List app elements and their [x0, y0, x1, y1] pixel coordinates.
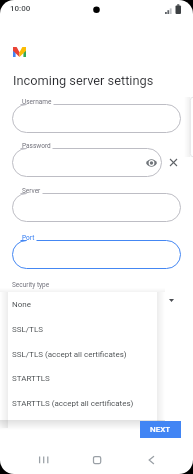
button[interactable]: STARTTLS (accept all certificates) [8, 391, 157, 416]
staticText: 10:00 [10, 4, 31, 13]
button[interactable]: STARTTLS [8, 366, 157, 391]
button[interactable]: Username [12, 104, 181, 133]
button[interactable]: Back [137, 449, 166, 471]
staticText: Server [22, 187, 41, 195]
staticText: SSL/TLS (accept all certificates) [12, 350, 127, 359]
button[interactable]: Recent apps [29, 449, 58, 471]
staticText: Incoming server settings [13, 73, 154, 88]
staticText: SSL/TLS [12, 325, 43, 334]
staticText: Port [22, 234, 35, 242]
staticText: Password [22, 142, 51, 150]
staticText: NEXT [150, 425, 171, 434]
staticText: Username [22, 98, 52, 106]
button[interactable]: SSL/TLS [8, 317, 157, 342]
button[interactable]: Show password [145, 157, 157, 169]
button[interactable]: None [8, 292, 157, 317]
button[interactable]: Server [12, 193, 181, 222]
button[interactable]: SSL/TLS (accept all certificates) [8, 342, 157, 367]
staticText: STARTTLS (accept all certificates) [12, 399, 134, 408]
button[interactable]: Port [12, 240, 181, 269]
button[interactable]: Show dropdown [165, 294, 178, 306]
staticText: None [12, 300, 31, 309]
button[interactable]: NEXT [140, 421, 181, 438]
button[interactable]: Clear [167, 156, 180, 169]
button[interactable]: Home [82, 449, 111, 471]
staticText: Security type [12, 281, 50, 289]
button[interactable]: Password [12, 148, 162, 177]
staticText: STARTTLS [12, 374, 50, 383]
